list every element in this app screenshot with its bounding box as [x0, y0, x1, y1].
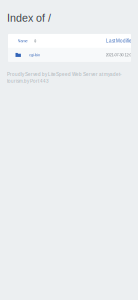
button[interactable]: Name: [3, 34, 37, 48]
staticText: Last Modified: [106, 38, 135, 43]
staticText: tourism.by Port 443: [7, 79, 49, 84]
button[interactable]: cgi-bin: [3, 48, 40, 62]
staticText: Proudly Served by LiteSpeed Web Server a…: [7, 72, 122, 77]
staticText: 2021-07-30 12:04: [105, 53, 133, 57]
staticText: Index of /: [7, 12, 51, 24]
staticText: Name: [17, 39, 27, 43]
button[interactable]: Last Modified: [3, 34, 136, 48]
staticText: cgi-bin: [29, 53, 40, 57]
